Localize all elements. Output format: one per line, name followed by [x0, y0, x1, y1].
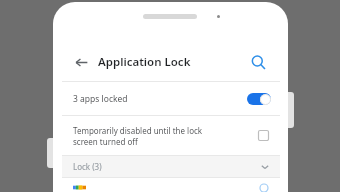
button[interactable]: Lock (3)	[62, 156, 280, 177]
button[interactable]	[62, 178, 280, 192]
button[interactable]: Search	[245, 49, 271, 75]
staticText: 3 apps locked	[73, 93, 128, 105]
staticText: Temporarily disabled until the lock scre…	[73, 125, 258, 147]
button[interactable]: Temporarily disable checkbox	[258, 130, 269, 141]
button[interactable]: 3 apps locked	[62, 82, 280, 115]
button[interactable]: Back	[68, 49, 94, 75]
staticText: Lock (3)	[73, 161, 102, 172]
button[interactable]: Temporarily disabled until the lock scre…	[62, 116, 280, 155]
staticText: Application Lock	[98, 54, 191, 70]
other: Collapse	[260, 162, 270, 172]
